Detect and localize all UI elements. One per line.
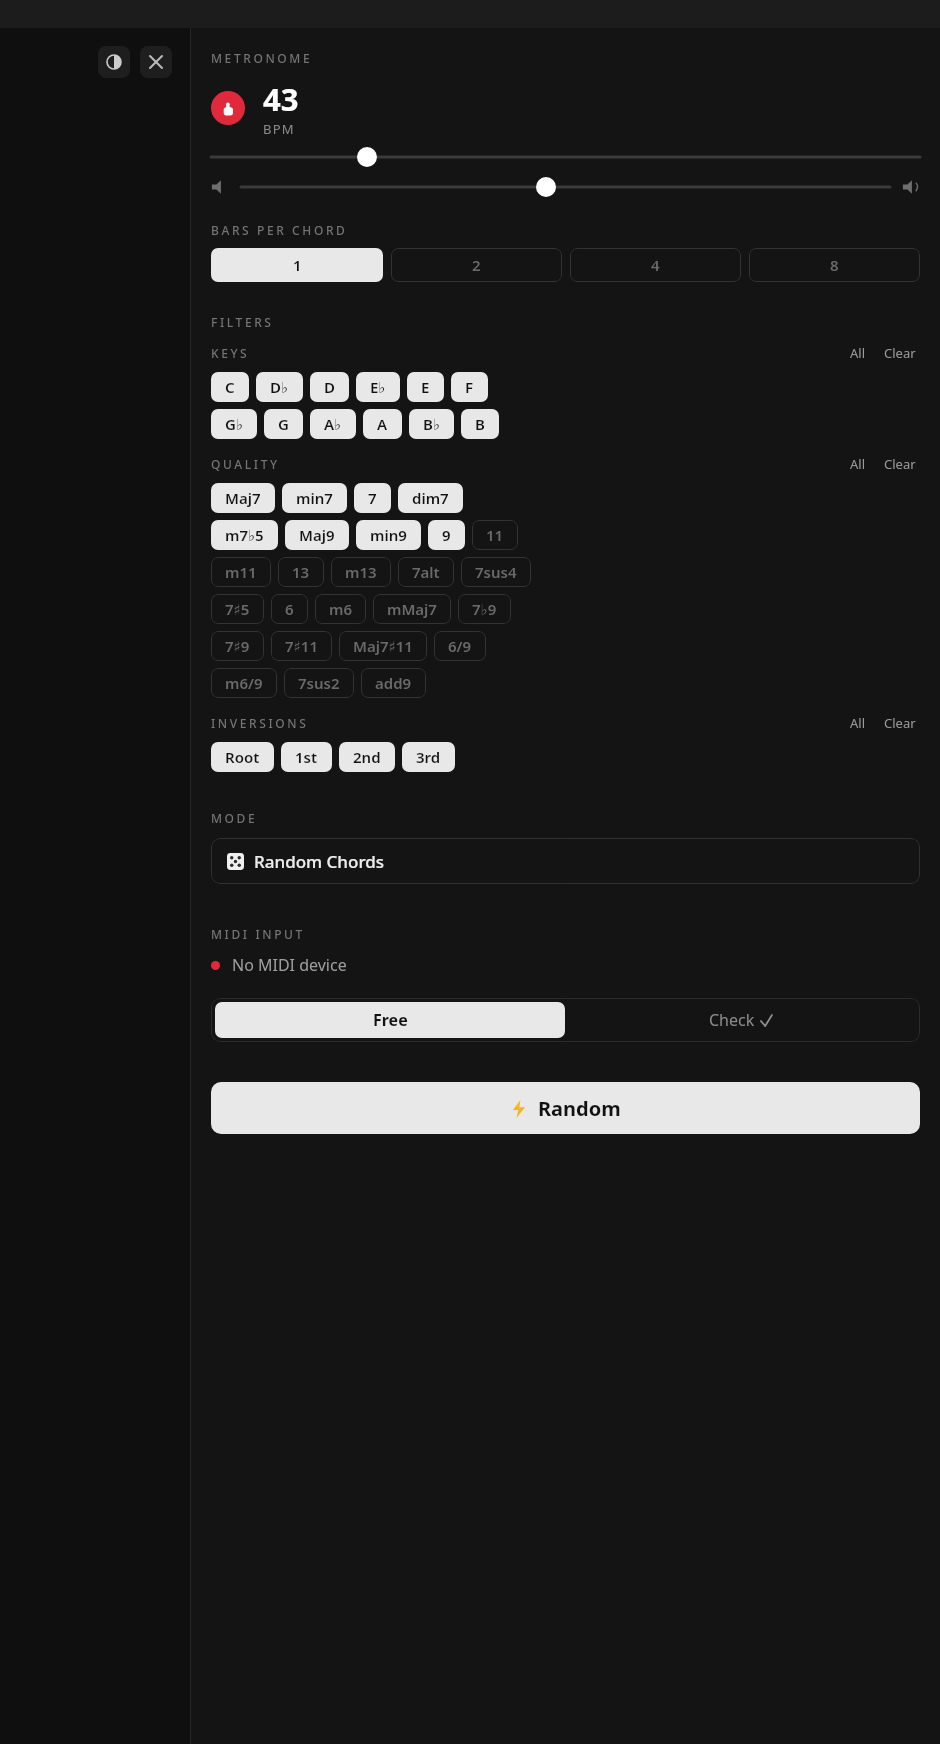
staticText: add9 [375,673,412,693]
button[interactable]: Maj7♯11 [339,631,427,661]
button[interactable]: 7♭9 [458,594,511,624]
button[interactable]: Check [565,1002,916,1038]
staticText: KEYS [211,345,846,361]
button[interactable]: G [264,409,303,439]
staticText: B [475,414,485,434]
button[interactable]: 1 [211,248,383,282]
button[interactable]: 9 [428,520,465,550]
button[interactable]: 2nd [339,742,395,772]
button[interactable]: 7sus4 [461,557,531,587]
button[interactable]: 7sus2 [284,668,354,698]
button[interactable]: 2 [391,248,562,282]
staticText: m13 [345,562,377,582]
staticText: min9 [370,525,407,545]
button[interactable]: 7alt [398,557,454,587]
staticText: INVERSIONS [211,715,846,731]
button[interactable]: add9 [361,668,426,698]
staticText: E [421,377,430,397]
button[interactable]: 8 [749,248,920,282]
staticText: All [850,714,866,732]
button[interactable]: 6 [271,594,308,624]
staticText: FILTERS [211,314,274,330]
staticText: Clear [884,344,916,362]
button[interactable]: A♭ [310,409,356,439]
button[interactable]: 7♯9 [211,631,264,661]
staticText: 4 [651,255,660,275]
button[interactable]: m6 [315,594,366,624]
button[interactable]: 7♯11 [271,631,332,661]
staticText: 43 [263,78,299,120]
staticText: Clear [884,455,916,473]
button[interactable]: Clear [880,712,920,734]
button[interactable]: Toggle theme [98,46,130,78]
button[interactable]: All [846,453,870,475]
button[interactable]: All [846,712,870,734]
staticText: All [850,455,866,473]
staticText: 11 [486,525,504,545]
button[interactable]: Random Chords [211,838,920,884]
button[interactable]: 11 [472,520,518,550]
staticText: Random Chords [254,850,385,873]
button[interactable]: m13 [331,557,391,587]
button[interactable]: Maj9 [285,520,349,550]
staticText: METRONOME [211,50,313,66]
staticText: 7alt [412,562,440,582]
button[interactable]: Clear [880,342,920,364]
staticText: min7 [296,488,333,508]
button[interactable]: 13 [278,557,324,587]
button[interactable]: Maj7 [211,483,275,513]
staticText: F [465,377,474,397]
staticText: Check [709,1009,755,1031]
button[interactable]: dim7 [398,483,463,513]
staticText: 13 [292,562,310,582]
staticText: D [324,377,335,397]
staticText: No MIDI device [232,954,347,976]
button[interactable]: m6/9 [211,668,277,698]
button[interactable]: m7♭5 [211,520,278,550]
button[interactable]: Play metronome [211,91,245,125]
button[interactable]: D♭ [256,372,303,402]
button[interactable]: B♭ [409,409,454,439]
button[interactable]: All [846,342,870,364]
button[interactable]: 7 [354,483,391,513]
staticText: m6 [329,599,352,619]
staticText: BPM [263,120,295,138]
staticText: D♭ [270,377,289,397]
staticText: MIDI INPUT [211,926,305,942]
staticText: 7sus2 [298,673,340,693]
button[interactable]: G♭ [211,409,257,439]
button[interactable]: Free [215,1002,565,1038]
staticText: G♭ [225,414,243,434]
button[interactable]: mMaj7 [373,594,451,624]
button[interactable]: E [407,372,444,402]
button[interactable]: Clear [880,453,920,475]
staticText: Root [225,747,260,767]
staticText: A [377,414,388,434]
button[interactable]: m11 [211,557,271,587]
button[interactable]: 1st [281,742,332,772]
button[interactable]: D [310,372,349,402]
button[interactable]: Random [211,1082,920,1134]
staticText: 7♭9 [472,599,497,619]
button[interactable]: min7 [282,483,347,513]
button[interactable]: 6/9 [434,631,486,661]
staticText: 1st [295,747,318,767]
button[interactable]: B [461,409,499,439]
staticText: m11 [225,562,257,582]
button[interactable]: F [451,372,488,402]
button[interactable]: 4 [570,248,741,282]
button[interactable]: C [211,372,249,402]
staticText: C [225,377,235,397]
button[interactable]: min9 [356,520,421,550]
button[interactable]: 7♯5 [211,594,264,624]
button[interactable]: E♭ [356,372,400,402]
staticText: A♭ [324,414,342,434]
staticText: 9 [442,525,451,545]
staticText: MODE [211,810,258,826]
button[interactable]: Root [211,742,274,772]
button[interactable]: A [363,409,402,439]
button[interactable]: Close [140,46,172,78]
button[interactable]: 3rd [402,742,455,772]
staticText: Maj7 [225,488,261,508]
staticText: Maj7♯11 [353,636,413,656]
